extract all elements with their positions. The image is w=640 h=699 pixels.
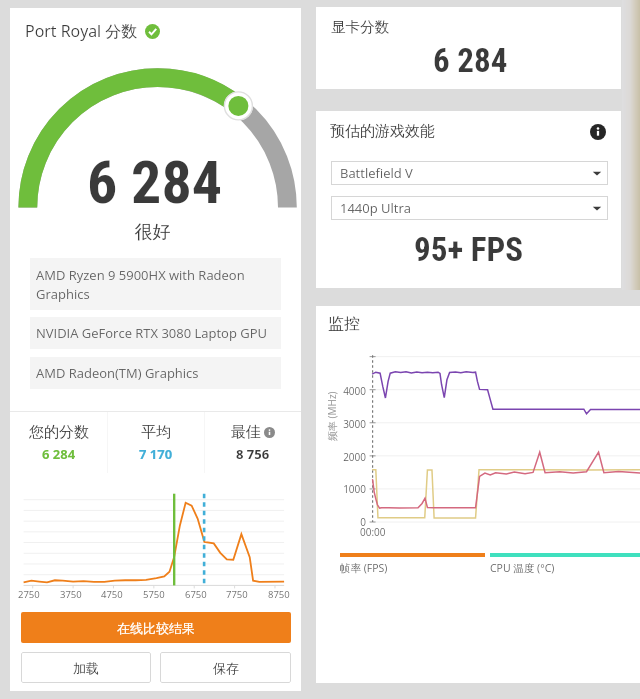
staticText: Port Royal 分数 [25, 20, 138, 42]
staticText: 6750 [185, 588, 207, 601]
staticText: Battlefield V [340, 164, 413, 182]
button[interactable]: 保存 [160, 652, 291, 683]
button[interactable]: AMD Ryzen 9 5900HX with Radeon Graphics [30, 258, 281, 310]
button[interactable]: 您的分数 [10, 412, 107, 473]
staticText: 7750 [226, 588, 248, 601]
staticText: 4000 [326, 384, 366, 398]
staticText: 很好 [7, 221, 298, 244]
staticText: 8 756 [236, 445, 270, 463]
staticText: CPU 温度 (°C) [490, 561, 555, 575]
staticText: 6 284 [42, 445, 76, 463]
staticText: 0 [326, 515, 366, 529]
staticText: 2000 [326, 450, 366, 464]
staticText: 加载 [73, 660, 99, 676]
button[interactable]: AMD Radeon(TM) Graphics [30, 357, 281, 389]
staticText: 7 170 [139, 445, 173, 463]
staticText: 8750 [268, 588, 290, 601]
staticText: 95+ FPS [316, 230, 621, 269]
button[interactable]: Info [590, 124, 606, 140]
staticText: 1440p Ultra [340, 199, 411, 217]
staticText: 3000 [326, 417, 366, 431]
staticText: 平均 [141, 423, 171, 442]
staticText: 5750 [143, 588, 165, 601]
staticText: 3750 [60, 588, 82, 601]
staticText: 2750 [18, 588, 40, 601]
button[interactable]: 在线比较结果 [21, 612, 291, 643]
button[interactable]: Battlefield V [331, 161, 608, 185]
staticText: 1000 [326, 482, 366, 496]
button[interactable]: 最佳 [205, 412, 301, 473]
button[interactable]: 平均 [108, 412, 204, 473]
button[interactable]: 加载 [21, 652, 151, 683]
staticText: AMD Ryzen 9 5900HX with Radeon Graphics [36, 266, 273, 303]
staticText: 帧率 (FPS) [340, 561, 388, 575]
button[interactable]: NVIDIA GeForce RTX 3080 Laptop GPU [30, 317, 281, 349]
staticText: 00:00 [360, 525, 386, 539]
staticText: 最佳 [231, 423, 261, 442]
staticText: 监控 [328, 314, 360, 334]
staticText: 4750 [101, 588, 123, 601]
staticText: 您的分数 [29, 423, 89, 442]
staticText: 在线比较结果 [117, 620, 195, 636]
button[interactable]: 1440p Ultra [331, 196, 608, 220]
staticText: 保存 [213, 660, 239, 676]
staticText: 预估的游戏效能 [330, 122, 435, 141]
staticText: 显卡分数 [331, 18, 389, 36]
staticText: AMD Radeon(TM) Graphics [36, 364, 199, 382]
staticText: 6 284 [9, 147, 300, 217]
staticText: 频率 (MHz) [325, 391, 339, 441]
staticText: 6 284 [433, 41, 508, 80]
staticText: NVIDIA GeForce RTX 3080 Laptop GPU [36, 324, 268, 342]
